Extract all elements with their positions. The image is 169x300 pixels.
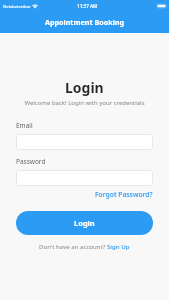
staticText: Netzbetreiber [3,3,31,9]
staticText: Password [16,157,46,166]
button[interactable]: Login [16,211,153,235]
staticText: Login [74,218,95,228]
other: Wi-Fi signal [32,4,38,9]
staticText: Appointment Booking [45,17,125,27]
staticText: Login [65,78,104,97]
other: Battery full [157,4,167,8]
staticText: Forgot Password? [95,190,153,199]
staticText: Welcome back! Login with your credential… [24,99,145,107]
button[interactable]: Password input field [16,170,153,186]
staticText: Don't have an account? Sign Up [39,242,130,250]
staticText: 11:37 AM [77,3,98,9]
button[interactable]: Forgot Password? [95,190,153,199]
button[interactable]: Don't have an account? Sign Up [16,242,153,250]
staticText: Email [16,121,33,130]
button[interactable]: Email input field [16,134,153,150]
